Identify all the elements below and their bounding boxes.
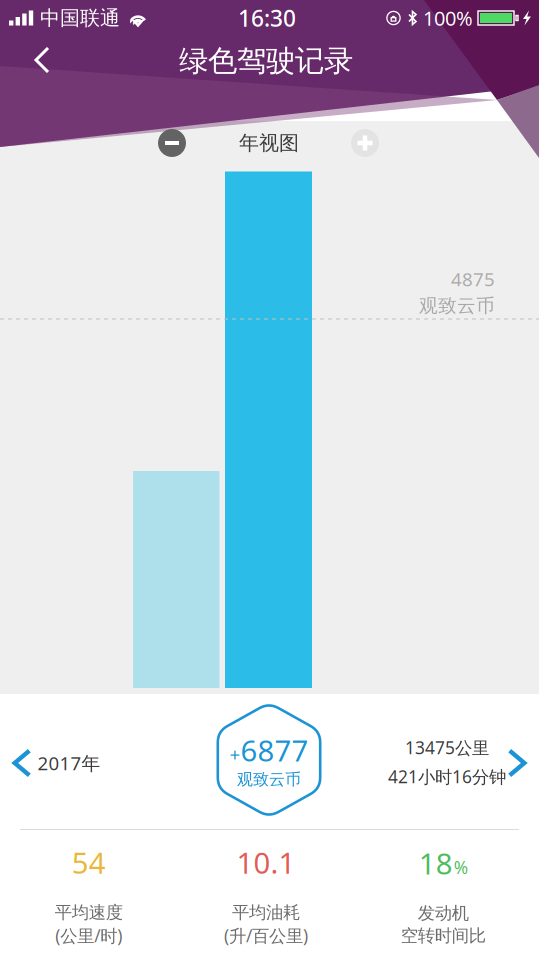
staticText: 绿色驾驶记录: [179, 43, 353, 79]
staticText: 观致云币: [237, 770, 301, 789]
staticText: 平均油耗: [232, 902, 300, 923]
staticText: 观致云币: [419, 294, 495, 317]
staticText: 平均速度: [55, 902, 123, 923]
staticText: 6877: [240, 731, 308, 770]
staticText: 2017年: [37, 751, 100, 775]
staticText: 100%: [423, 5, 473, 31]
staticText: 16:30: [238, 3, 296, 33]
button[interactable]: Zoom in: [343, 121, 387, 165]
button[interactable]: Previous year: [0, 740, 45, 786]
staticText: 54: [72, 843, 106, 882]
staticText: 4875: [451, 267, 495, 291]
staticText: 18: [419, 844, 453, 883]
staticText: (升/百公里): [224, 924, 308, 947]
staticText: %: [454, 856, 468, 879]
staticText: 发动机: [418, 903, 469, 924]
button[interactable]: Back: [17, 35, 67, 85]
button[interactable]: Zoom out: [150, 121, 194, 165]
staticText: 421小时16分钟: [388, 765, 506, 788]
staticText: 10.1: [236, 843, 295, 882]
staticText: 中国联通: [40, 6, 120, 30]
staticText: +: [229, 742, 240, 767]
staticText: 年视图: [239, 131, 299, 155]
staticText: 空转时间比: [401, 925, 486, 946]
staticText: (公里/时): [55, 924, 122, 947]
staticText: 13475公里: [405, 736, 489, 759]
button[interactable]: Next year: [494, 740, 539, 786]
